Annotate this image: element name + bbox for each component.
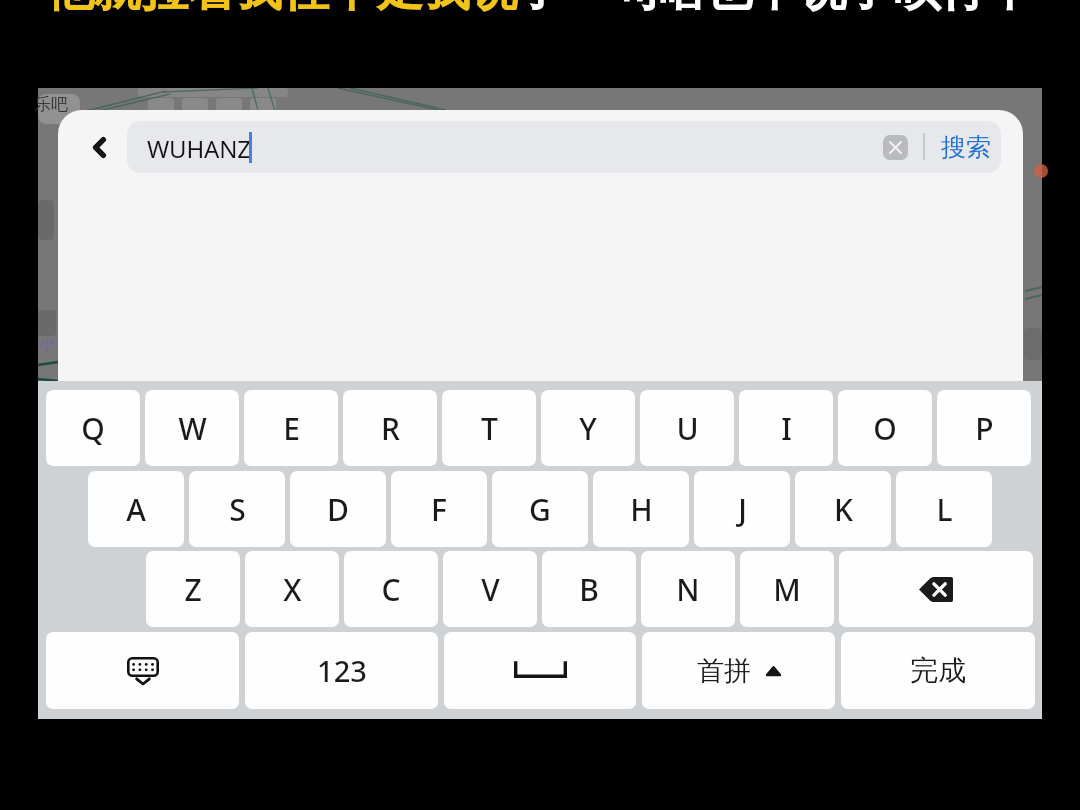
staticText: 首拼: [697, 654, 751, 688]
button[interactable]: J: [694, 471, 790, 547]
button[interactable]: Backspace: [839, 551, 1033, 627]
staticText: S: [229, 489, 246, 530]
button[interactable]: Z: [146, 551, 240, 627]
staticText: H: [630, 489, 653, 530]
button[interactable]: B: [542, 551, 636, 627]
staticText: 小: [39, 334, 55, 354]
staticText: P: [975, 408, 994, 449]
staticText: A: [126, 489, 146, 530]
staticText: D: [327, 489, 349, 530]
staticText: K: [834, 489, 853, 530]
staticText: E: [283, 408, 300, 449]
button[interactable]: WUHANZ: [127, 121, 1001, 173]
staticText: U: [676, 408, 699, 449]
staticText: L: [936, 489, 953, 530]
button[interactable]: I: [739, 390, 833, 466]
button[interactable]: Back: [68, 116, 130, 178]
staticText: 123: [317, 651, 367, 690]
button[interactable]: O: [838, 390, 932, 466]
button[interactable]: R: [343, 390, 437, 466]
staticText: O: [873, 408, 897, 449]
button[interactable]: V: [443, 551, 537, 627]
button[interactable]: P: [937, 390, 1031, 466]
staticText: Y: [579, 408, 597, 449]
button[interactable]: Space: [444, 632, 636, 709]
button[interactable]: U: [640, 390, 734, 466]
staticText: V: [481, 569, 500, 610]
button[interactable]: Q: [46, 390, 140, 466]
staticText: N: [676, 569, 700, 610]
button[interactable]: 搜索: [941, 121, 991, 173]
staticText: 他就拉着我往下走我说: [47, 0, 517, 19]
button[interactable]: N: [641, 551, 735, 627]
button[interactable]: W: [145, 390, 239, 466]
staticText: Q: [81, 408, 105, 449]
staticText: 完成: [910, 653, 966, 688]
button[interactable]: 123: [245, 632, 438, 709]
button[interactable]: T: [442, 390, 536, 466]
button[interactable]: Y: [541, 390, 635, 466]
button[interactable]: L: [896, 471, 992, 547]
button[interactable]: Hide keyboard: [46, 632, 239, 709]
button[interactable]: 完成: [841, 632, 1035, 709]
staticText: F: [431, 489, 447, 530]
staticText: B: [579, 569, 599, 610]
staticText: T: [481, 408, 498, 449]
staticText: Z: [184, 569, 202, 610]
staticText: W: [178, 408, 207, 449]
button[interactable]: 首拼: [642, 632, 835, 709]
staticText: 搜索: [941, 132, 991, 163]
staticText: X: [283, 569, 302, 610]
staticText: G: [529, 489, 551, 530]
staticText: R: [381, 408, 400, 449]
staticText: M: [773, 569, 801, 610]
staticText: I: [781, 408, 792, 449]
button[interactable]: X: [245, 551, 339, 627]
staticText: J: [738, 489, 747, 530]
button[interactable]: H: [593, 471, 689, 547]
button[interactable]: K: [795, 471, 891, 547]
button[interactable]: S: [189, 471, 285, 547]
staticText: WUHANZ: [147, 132, 251, 165]
staticText: 乐吧: [34, 94, 68, 115]
button[interactable]: M: [740, 551, 834, 627]
button[interactable]: D: [290, 471, 386, 547]
staticText: 了一句啥也不说了呗行不: [517, 0, 1034, 19]
button[interactable]: C: [344, 551, 438, 627]
button[interactable]: G: [492, 471, 588, 547]
button[interactable]: E: [244, 390, 338, 466]
button[interactable]: Clear text: [883, 135, 908, 160]
button[interactable]: A: [88, 471, 184, 547]
button[interactable]: F: [391, 471, 487, 547]
staticText: C: [381, 569, 401, 610]
